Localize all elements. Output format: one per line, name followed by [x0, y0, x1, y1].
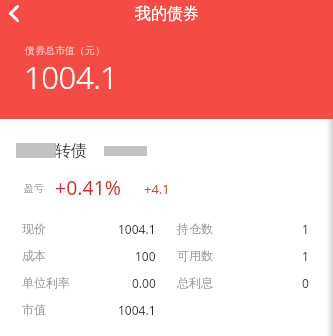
staticText: 转债 [55, 141, 87, 161]
staticText: 1 [302, 221, 309, 237]
staticText: 持仓数 [177, 221, 213, 236]
staticText: +0.41% [55, 174, 122, 201]
staticText: 1004.1 [118, 302, 156, 318]
staticText: 1004.1 [24, 56, 118, 98]
staticText: 0 [302, 275, 309, 291]
staticText: 0.00 [132, 275, 156, 291]
staticText: 总利息 [177, 275, 213, 290]
staticText: 我的债券 [135, 4, 199, 24]
staticText: 市值 [22, 302, 46, 317]
button[interactable]: 持仓数 [177, 215, 309, 242]
staticText: 盈亏 [24, 182, 44, 195]
staticText: +4.1 [144, 180, 170, 198]
button[interactable]: 可用数 [177, 242, 309, 269]
staticText: 1 [302, 248, 309, 264]
staticText: 债券总市值（元） [25, 44, 105, 57]
button[interactable]: 总利息 [177, 269, 309, 296]
button[interactable]: 现价 [22, 215, 156, 242]
staticText: 可用数 [177, 248, 213, 263]
button[interactable]: 成本 [22, 242, 156, 269]
button[interactable]: 单位利率 [22, 269, 156, 296]
button[interactable]: 市值 [22, 296, 156, 323]
staticText: 现价 [22, 221, 46, 236]
staticText: 1004.1 [118, 221, 156, 237]
staticText: 单位利率 [22, 275, 70, 290]
staticText: 成本 [22, 248, 46, 263]
staticText: 100 [135, 248, 156, 264]
button[interactable]: Back [0, 0, 34, 33]
